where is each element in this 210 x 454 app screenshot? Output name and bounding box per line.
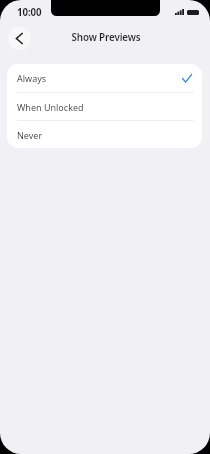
staticText: Never [17,129,43,141]
staticText: Show Previews [71,31,141,44]
staticText: Always [17,72,47,84]
button[interactable]: Always [7,64,202,92]
button[interactable]: When Unlocked [7,93,202,120]
button[interactable]: Never [7,121,202,148]
button[interactable]: Back [8,27,31,50]
staticText: When Unlocked [17,101,84,113]
staticText: 10:00 [17,6,42,19]
